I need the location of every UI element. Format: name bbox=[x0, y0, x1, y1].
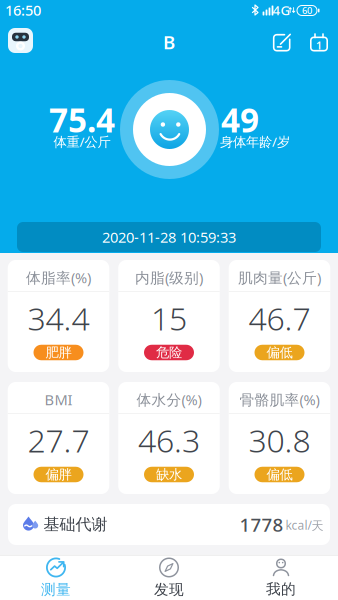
staticText: 内脂(级别) bbox=[135, 268, 203, 287]
staticText: 1 bbox=[316, 38, 322, 52]
staticText: 肌肉量(公斤) bbox=[238, 268, 321, 287]
staticText: 46.3 bbox=[138, 419, 200, 461]
button[interactable]: 骨骼肌率(%) bbox=[229, 382, 330, 494]
staticText: 体脂率(%) bbox=[26, 268, 91, 287]
staticText: 34.4 bbox=[27, 297, 89, 339]
staticText: 肥胖 bbox=[45, 344, 71, 361]
staticText: 49 bbox=[221, 97, 259, 142]
button[interactable]: 体脂率(%) bbox=[8, 260, 109, 372]
staticText: 偏胖 bbox=[45, 466, 71, 483]
staticText: 缺水 bbox=[156, 466, 182, 483]
staticText: 30.8 bbox=[248, 419, 310, 461]
button[interactable]: 体水分(%) bbox=[118, 382, 220, 494]
button[interactable]: 我的 bbox=[236, 557, 326, 599]
staticText: 偏低 bbox=[266, 466, 292, 483]
staticText: 体重/公斤 bbox=[53, 133, 110, 150]
button[interactable]: 肌肉量(公斤) bbox=[229, 260, 330, 372]
staticText: 身体年龄/岁 bbox=[220, 133, 290, 150]
staticText: 发现 bbox=[154, 580, 184, 598]
button[interactable]: 发现 bbox=[124, 557, 214, 599]
staticText: 危险 bbox=[156, 344, 182, 361]
staticText: 27.7 bbox=[27, 419, 89, 461]
staticText: BMI bbox=[44, 390, 72, 409]
button[interactable]: Device bbox=[8, 28, 33, 53]
staticText: 骨骼肌率(%) bbox=[239, 390, 319, 409]
button[interactable]: BMI bbox=[8, 382, 109, 494]
staticText: 75.4 bbox=[49, 97, 115, 142]
staticText: 16:50 bbox=[5, 0, 41, 20]
staticText: 2020-11-28 10:59:33 bbox=[102, 227, 236, 247]
button[interactable]: 基础代谢 bbox=[8, 504, 330, 545]
staticText: B bbox=[163, 30, 175, 54]
staticText: 46.7 bbox=[248, 297, 310, 339]
button[interactable]: 测量 bbox=[11, 557, 101, 599]
button[interactable]: Calendar bbox=[306, 29, 332, 55]
button[interactable]: 内脂(级别) bbox=[118, 260, 220, 372]
staticText: 偏低 bbox=[266, 344, 292, 361]
button[interactable]: Record bbox=[269, 29, 295, 55]
staticText: 测量 bbox=[41, 580, 71, 598]
button[interactable]: 2020-11-28 10:59:33 bbox=[17, 222, 321, 252]
staticText: 4G bbox=[272, 1, 290, 19]
staticText: 15 bbox=[151, 297, 187, 339]
staticText: 我的 bbox=[266, 580, 296, 598]
staticText: 60 bbox=[302, 4, 312, 17]
staticText: 1778 bbox=[239, 512, 283, 537]
staticText: 体水分(%) bbox=[136, 390, 201, 409]
staticText: 基础代谢 bbox=[43, 515, 107, 534]
staticText: kcal/天 bbox=[285, 517, 323, 533]
